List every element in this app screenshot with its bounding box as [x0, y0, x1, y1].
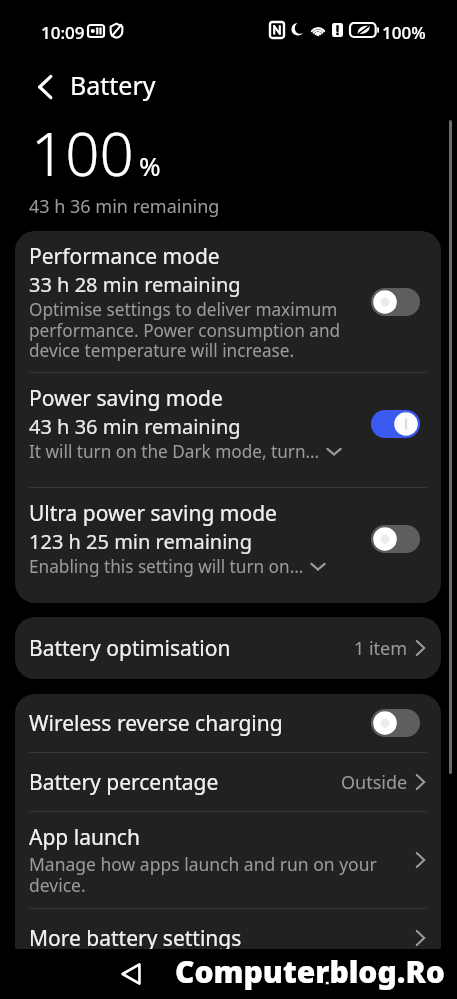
button[interactable]: Recents	[308, 956, 344, 992]
staticText: More battery settings	[29, 924, 415, 953]
button[interactable]: Toggle	[371, 410, 420, 438]
button[interactable]: Back	[32, 74, 58, 100]
staticText: 43 h 36 min remaining	[29, 413, 241, 440]
button[interactable]: Battery percentage	[15, 753, 441, 811]
button[interactable]: Power saving mode	[15, 373, 441, 487]
button[interactable]: Toggle	[371, 288, 420, 316]
staticText: 1 item	[354, 636, 408, 661]
staticText: Battery optimisation	[29, 634, 354, 663]
staticText: Power saving mode	[29, 384, 223, 413]
staticText: Battery percentage	[29, 768, 341, 797]
button[interactable]: Performance mode	[15, 231, 441, 372]
staticText: Computerblog.Ro	[175, 951, 445, 992]
staticText: Manage how apps launch and run on your d…	[29, 852, 415, 897]
button[interactable]: Toggle	[371, 525, 420, 553]
staticText: 100%	[382, 21, 426, 44]
staticText: App launch	[29, 823, 140, 852]
staticText: Computerblog.Ro	[175, 951, 445, 992]
button[interactable]: Ultra power saving mode	[15, 488, 441, 603]
staticText: 43 h 36 min remaining	[29, 194, 220, 219]
staticText: Battery	[70, 68, 156, 102]
staticText: Outside	[341, 770, 408, 795]
staticText: Ultra power saving mode	[29, 499, 277, 528]
staticText: 100	[31, 112, 134, 194]
staticText: Performance mode	[29, 242, 220, 271]
staticText: It will turn on the Dark mode, turn…	[29, 440, 320, 463]
staticText: 10:09	[41, 21, 85, 44]
button[interactable]: Wireless reverse charging	[15, 694, 441, 752]
staticText: %	[139, 148, 161, 183]
staticText: 33 h 28 min remaining	[29, 271, 241, 298]
staticText: Wireless reverse charging	[29, 709, 371, 738]
button[interactable]: Battery optimisation	[15, 617, 441, 679]
staticText: 123 h 25 min remaining	[29, 528, 252, 555]
staticText: Optimise settings to deliver maximum per…	[29, 298, 363, 362]
button[interactable]: Toggle	[371, 709, 420, 737]
button[interactable]: App launch	[15, 812, 441, 908]
button[interactable]: Home	[211, 956, 247, 992]
button[interactable]: More battery settings	[15, 909, 441, 967]
staticText: Enabling this setting will turn on…	[29, 555, 304, 578]
button[interactable]: Back	[113, 956, 149, 992]
